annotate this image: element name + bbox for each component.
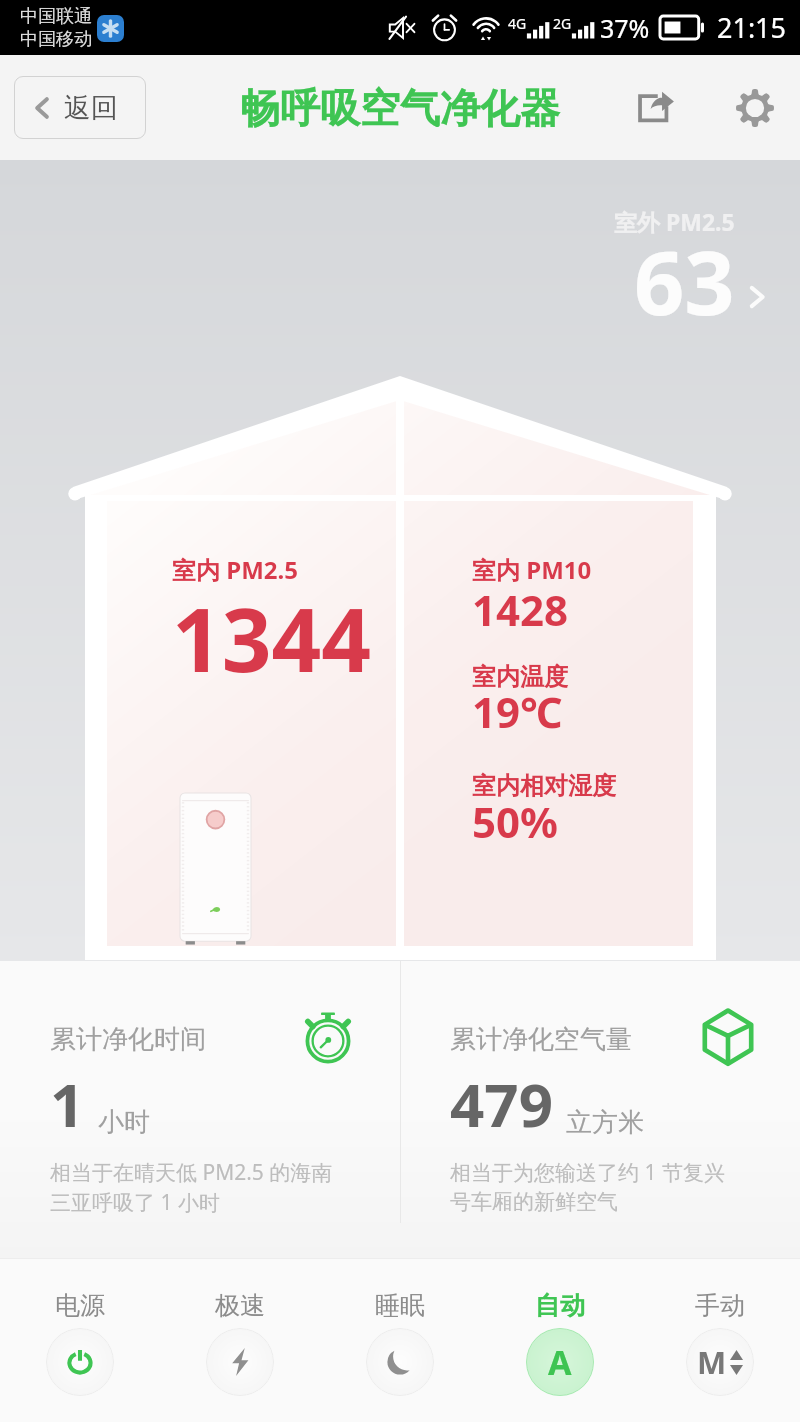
staticText: 中国联通 bbox=[20, 5, 92, 28]
staticText: 37% bbox=[600, 11, 650, 45]
staticText: A bbox=[548, 1339, 572, 1385]
staticText: 63 bbox=[634, 221, 735, 341]
staticText: 室内相对湿度 bbox=[472, 771, 616, 801]
button[interactable]: 累计净化时间 bbox=[50, 961, 400, 1216]
staticText: 中国移动 bbox=[20, 28, 92, 51]
staticText: 自动 bbox=[535, 1290, 585, 1321]
staticText: 50% bbox=[472, 793, 558, 850]
staticText: 立方米 bbox=[566, 1106, 644, 1139]
button[interactable]: Share bbox=[622, 75, 688, 141]
staticText: 极速 bbox=[215, 1290, 265, 1321]
staticText: 21:15 bbox=[717, 9, 787, 46]
staticText: 2G bbox=[553, 14, 572, 33]
button[interactable]: 手动 bbox=[640, 1259, 800, 1396]
button[interactable]: 睡眠 bbox=[320, 1259, 480, 1396]
staticText: 相当于在晴天低 PM2.5 的海南 三亚呼吸了 1 小时 bbox=[50, 1158, 333, 1216]
staticText: 电源 bbox=[55, 1290, 105, 1321]
button[interactable]: 累计净化空气量 bbox=[450, 961, 800, 1215]
button[interactable]: 返回 bbox=[14, 76, 146, 139]
staticText: 室外 PM2.5 bbox=[614, 206, 735, 237]
staticText: 室内 PM10 bbox=[472, 553, 592, 586]
button[interactable]: Settings bbox=[722, 75, 788, 141]
staticText: 畅呼吸空气净化器 bbox=[240, 83, 560, 133]
button[interactable]: 电源 bbox=[0, 1259, 160, 1396]
staticText: 小时 bbox=[98, 1106, 150, 1139]
staticText: 累计净化空气量 bbox=[450, 1023, 632, 1055]
staticText: 返回 bbox=[64, 91, 118, 125]
staticText: 19℃ bbox=[472, 683, 563, 740]
staticText: 4G bbox=[508, 14, 527, 33]
staticText: 室内 PM2.5 bbox=[172, 553, 298, 586]
staticText: 相当于为您输送了约 1 节复兴 号车厢的新鲜空气 bbox=[450, 1158, 725, 1215]
button[interactable]: 极速 bbox=[160, 1259, 320, 1396]
staticText: 1344 bbox=[172, 579, 372, 697]
staticText: M bbox=[697, 1341, 727, 1383]
button[interactable]: 室外 PM2.5 bbox=[600, 196, 780, 336]
staticText: 睡眠 bbox=[375, 1290, 425, 1321]
staticText: 手动 bbox=[695, 1290, 745, 1321]
staticText: 1428 bbox=[472, 581, 569, 638]
staticText: 累计净化时间 bbox=[50, 1023, 206, 1055]
staticText: 室内温度 bbox=[472, 662, 568, 692]
button[interactable]: 自动 bbox=[480, 1259, 640, 1396]
staticText: 1 bbox=[50, 1063, 85, 1145]
staticText: 479 bbox=[450, 1063, 553, 1145]
